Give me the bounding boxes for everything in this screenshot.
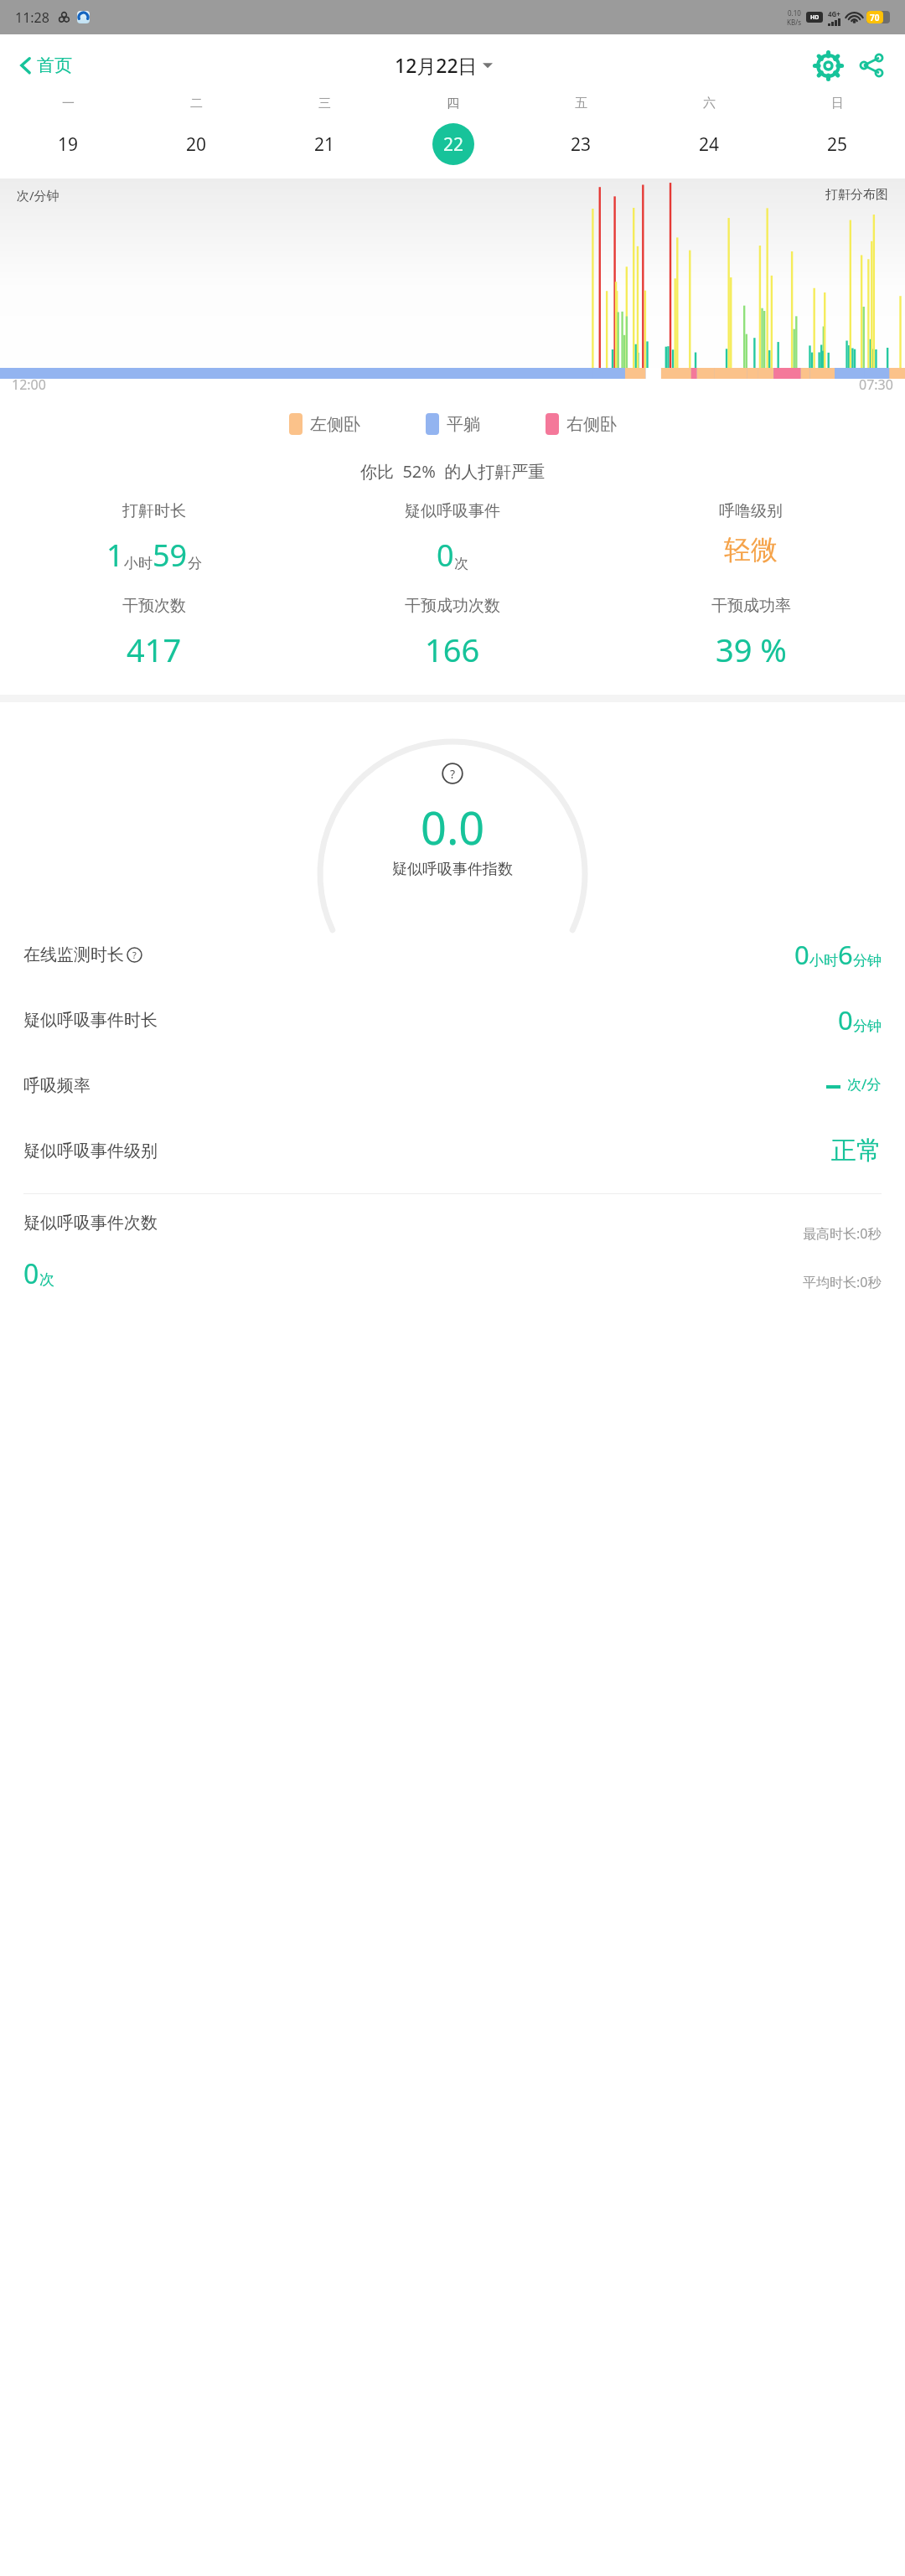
staticText: 次	[39, 1270, 54, 1290]
staticText: 0	[794, 937, 809, 972]
staticText: 6	[838, 937, 853, 972]
button[interactable]: Share	[853, 47, 890, 84]
staticText: 呼吸频率	[23, 1075, 90, 1096]
staticText: KB/s	[787, 18, 801, 27]
staticText: 干预次数	[122, 596, 186, 616]
staticText: 小时	[809, 952, 838, 970]
staticText: 0.0	[421, 796, 485, 858]
button[interactable]: 21	[261, 123, 389, 165]
button[interactable]: 19	[3, 123, 132, 165]
staticText: 轻微	[724, 533, 778, 566]
staticText: 日	[831, 96, 844, 111]
staticText: 25	[827, 132, 848, 157]
staticText: 平躺	[447, 414, 480, 435]
button[interactable]: 疑似呼吸事件时长	[23, 987, 882, 1053]
staticText: 呼噜级别	[719, 501, 783, 521]
staticText: 0	[838, 1002, 853, 1037]
staticText: 0	[23, 1255, 39, 1292]
staticText: 四	[447, 96, 459, 111]
staticText: ?	[450, 766, 456, 782]
staticText: 五	[575, 96, 587, 111]
button[interactable]: 24	[645, 123, 773, 165]
staticText: 首页	[37, 54, 72, 76]
staticText: 1	[106, 535, 124, 576]
staticText: 分	[188, 555, 202, 572]
staticText: 次/分	[847, 1074, 882, 1094]
staticText: 21	[314, 132, 335, 157]
staticText: 分钟	[853, 952, 882, 970]
staticText: 11:28	[15, 8, 49, 27]
button[interactable]: 23	[517, 123, 645, 165]
staticText: 右侧卧	[566, 414, 617, 435]
button[interactable]: 25	[773, 123, 902, 165]
button[interactable]: 疑似呼吸事件级别	[23, 1118, 882, 1183]
staticText: 六	[703, 96, 716, 111]
staticText: 小时	[124, 555, 153, 572]
staticText: 次/分钟	[17, 187, 59, 204]
staticText: 70	[870, 12, 880, 23]
button[interactable]: 22	[389, 123, 517, 165]
button[interactable]: 首页	[15, 54, 79, 76]
staticText: 二	[190, 96, 203, 111]
staticText: 疑似呼吸事件次数	[23, 1213, 158, 1234]
staticText: 166	[425, 628, 480, 671]
button[interactable]: 呼吸频率	[23, 1053, 882, 1118]
staticText: 在线监测时长	[23, 944, 124, 965]
staticText: 19	[58, 132, 79, 157]
staticText: 22	[443, 132, 464, 157]
staticText: 打鼾分布图	[825, 187, 888, 203]
button[interactable]: 疑似呼吸事件次数	[23, 1213, 882, 1292]
staticText: 正常	[831, 1135, 882, 1166]
staticText: 疑似呼吸事件指数	[392, 860, 513, 879]
staticText: 0.10	[788, 8, 801, 18]
button[interactable]: 20	[132, 123, 261, 165]
staticText: 12月22日	[395, 52, 478, 78]
staticText: 417	[127, 628, 182, 671]
staticText: 打鼾时长	[122, 501, 186, 521]
staticText: 07:30	[859, 375, 893, 394]
staticText: 一	[62, 96, 75, 111]
staticText: 疑似呼吸事件时长	[23, 1010, 158, 1031]
staticText: 24	[699, 132, 720, 157]
staticText: 23	[571, 132, 592, 157]
staticText: 疑似呼吸事件	[405, 501, 500, 521]
staticText: 疑似呼吸事件级别	[23, 1141, 158, 1161]
staticText: 12:00	[12, 375, 46, 394]
staticText: 三	[318, 96, 331, 111]
staticText: 你比 52% 的人打鼾严重	[360, 460, 546, 483]
staticText: 次	[454, 555, 468, 572]
staticText: ?	[132, 949, 137, 961]
staticText: 20	[186, 132, 207, 157]
button[interactable]: 在线监测时长	[23, 922, 882, 987]
staticText: 最高时长:0秒	[803, 1224, 882, 1243]
staticText: 平均时长:0秒	[803, 1273, 882, 1291]
staticText: 4G+	[828, 9, 840, 18]
staticText: 干预成功率	[711, 596, 791, 616]
staticText: HD	[810, 13, 820, 22]
staticText: 0	[437, 535, 454, 576]
staticText: 干预成功次数	[405, 596, 500, 616]
button[interactable]: 12月22日	[395, 52, 493, 78]
staticText: 分钟	[853, 1017, 882, 1035]
button[interactable]: Settings	[809, 47, 846, 84]
staticText: 59	[153, 535, 188, 576]
staticText: 39 %	[716, 628, 787, 671]
staticText: 左侧卧	[310, 414, 360, 435]
button[interactable]: Help	[442, 763, 463, 784]
